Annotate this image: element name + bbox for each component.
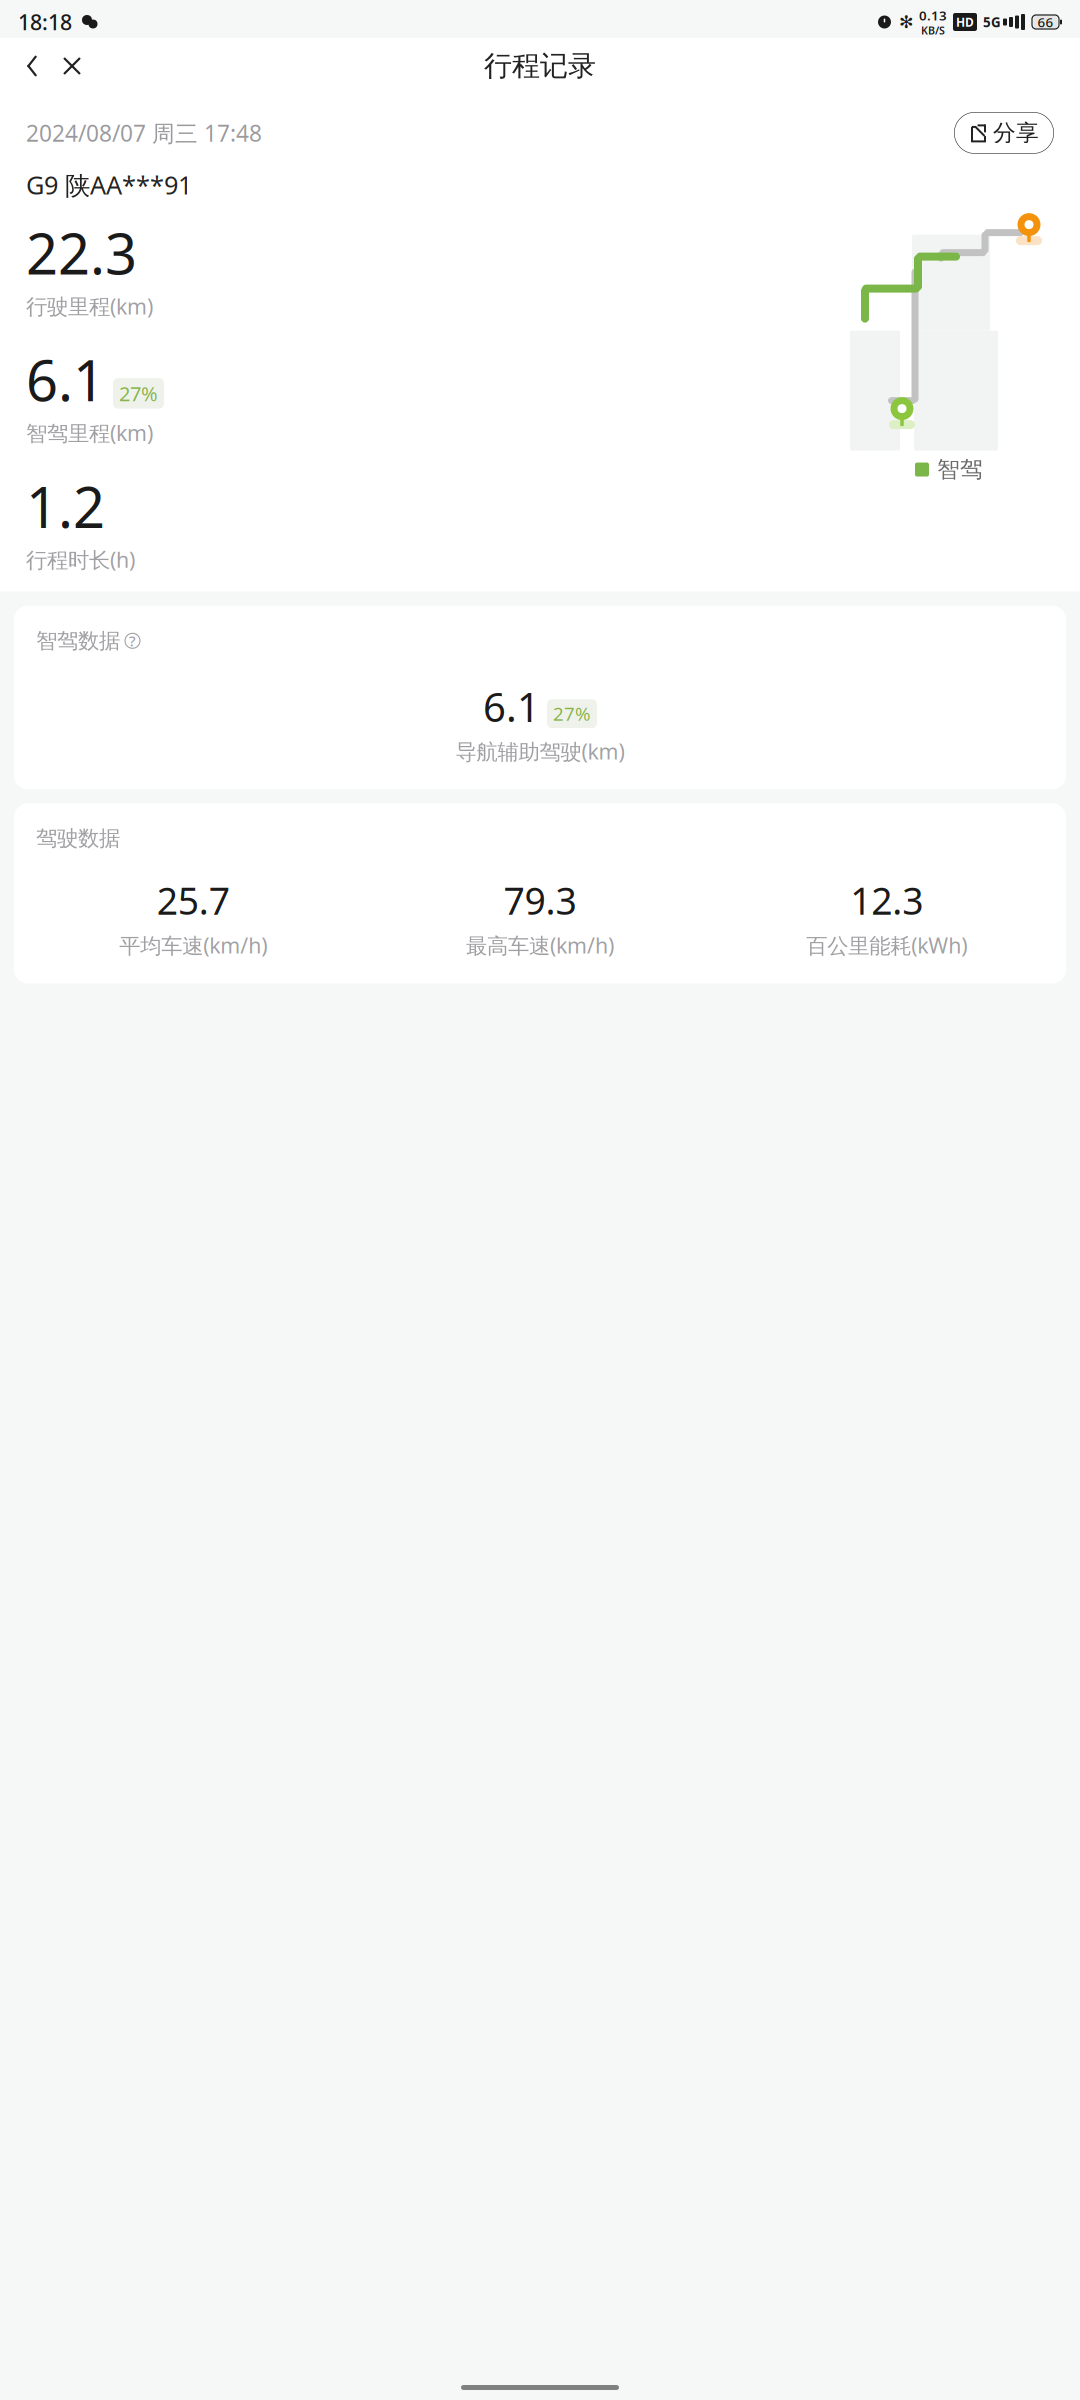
staticText: 6.1: [483, 680, 540, 733]
staticText: 22.3: [26, 216, 137, 290]
staticText: 行驶里程(km): [26, 292, 153, 320]
staticText: 百公里能耗(kWh): [806, 931, 967, 959]
staticText: 25.7: [157, 876, 230, 925]
button[interactable]: 返回: [12, 44, 52, 88]
staticText: 行程时长(h): [26, 545, 135, 574]
staticText: 驾驶数据: [36, 825, 120, 852]
staticText: 智驾里程(km): [26, 419, 153, 447]
staticText: 27%: [553, 701, 591, 726]
staticText: 导航辅助驾驶(km): [455, 737, 624, 765]
staticText: HD: [956, 14, 974, 30]
staticText: 5G: [983, 13, 1001, 31]
staticText: 0.13: [919, 7, 947, 24]
staticText: ?: [129, 631, 136, 651]
button[interactable]: 分享: [954, 112, 1054, 154]
button[interactable]: 关闭: [52, 44, 92, 88]
staticText: 27%: [119, 380, 158, 407]
staticText: 6.1: [26, 342, 105, 417]
staticText: KB/S: [921, 23, 945, 37]
staticText: G9 陕AA***91: [26, 168, 192, 202]
staticText: 智驾数据: [36, 628, 120, 654]
staticText: 12.3: [850, 876, 923, 925]
staticText: 18:18: [18, 8, 72, 36]
staticText: 分享: [993, 119, 1039, 147]
staticText: 最高车速(km/h): [466, 931, 614, 959]
staticText: 79.3: [503, 876, 576, 925]
staticText: 行程记录: [484, 49, 596, 83]
staticText: 2024/08/07 周三 17:48: [26, 118, 262, 148]
staticText: ✻: [899, 12, 914, 32]
staticText: 平均车速(km/h): [119, 931, 267, 959]
staticText: 智驾: [937, 456, 983, 483]
staticText: 66: [1037, 13, 1053, 31]
staticText: 1.2: [26, 469, 105, 543]
